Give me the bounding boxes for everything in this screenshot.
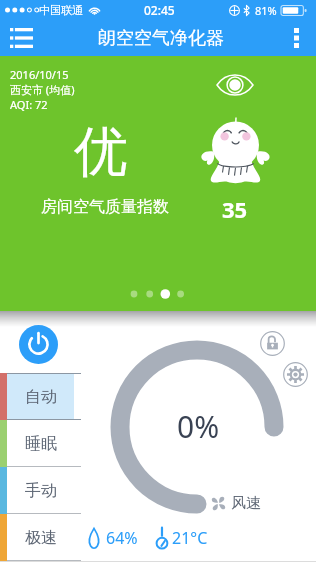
- button[interactable]: More options: [276, 20, 316, 56]
- staticText: 手动: [25, 481, 57, 501]
- staticText: 朗空空气净化器: [98, 27, 224, 50]
- staticText: 西安市 (均值): [10, 82, 75, 97]
- staticText: 自动: [25, 387, 57, 407]
- button[interactable]: 自动: [0, 373, 74, 420]
- button[interactable]: 睡眠: [0, 420, 74, 467]
- button[interactable]: 极速: [0, 514, 74, 561]
- button[interactable]: Lock: [260, 331, 285, 356]
- staticText: 睡眠: [25, 434, 57, 454]
- button[interactable]: Show details: [213, 68, 257, 101]
- staticText: 81%: [255, 3, 277, 18]
- button[interactable]: Settings: [283, 362, 308, 387]
- button[interactable]: Menu: [0, 20, 42, 56]
- button[interactable]: Power: [19, 325, 58, 364]
- staticText: 风速: [231, 494, 261, 513]
- staticText: 0%: [177, 406, 220, 442]
- staticText: 64%: [106, 527, 138, 549]
- staticText: 02:45: [144, 2, 175, 18]
- staticText: 21°C: [172, 527, 208, 549]
- staticText: 极速: [25, 528, 57, 548]
- staticText: 优: [74, 118, 128, 186]
- staticText: 房间空气质量指数: [41, 197, 169, 217]
- button[interactable]: 手动: [0, 467, 74, 514]
- staticText: AQI: 72: [10, 97, 48, 112]
- staticText: 2016/10/15: [10, 67, 69, 82]
- staticText: 35: [222, 194, 248, 218]
- staticText: 中国联通: [39, 3, 83, 17]
